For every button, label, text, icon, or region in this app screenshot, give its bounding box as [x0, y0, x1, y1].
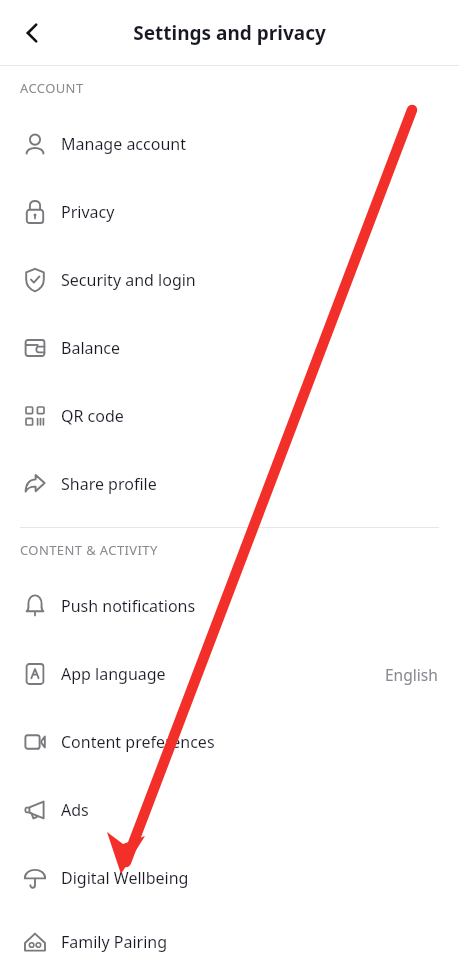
button[interactable]: Content preferences [0, 708, 459, 776]
staticText: Balance [61, 337, 121, 359]
button[interactable]: Push notifications [0, 572, 459, 640]
button[interactable]: Ads [0, 776, 459, 844]
button[interactable]: Back [8, 9, 56, 57]
button[interactable]: Balance [0, 314, 459, 382]
button[interactable]: Security and login [0, 246, 459, 314]
staticText: Ads [61, 799, 89, 821]
button[interactable]: Privacy [0, 178, 459, 246]
staticText: Manage account [61, 133, 186, 155]
staticText: English [385, 664, 438, 685]
button[interactable]: Digital Wellbeing [0, 844, 459, 912]
button[interactable]: Family Pairing [0, 912, 459, 972]
staticText: Push notifications [61, 595, 196, 617]
staticText: Share profile [61, 473, 157, 495]
staticText: Privacy [61, 201, 115, 223]
staticText: App language [61, 663, 166, 685]
staticText: QR code [61, 405, 124, 427]
staticText: Digital Wellbeing [61, 867, 189, 889]
staticText: Settings and privacy [133, 20, 326, 46]
staticText: CONTENT & ACTIVITY [20, 541, 158, 559]
button[interactable]: App language [0, 640, 459, 708]
button[interactable]: Share profile [0, 450, 459, 518]
staticText: Security and login [61, 269, 196, 291]
button[interactable]: QR code [0, 382, 459, 450]
button[interactable]: Manage account [0, 110, 459, 178]
staticText: Content preferences [61, 731, 215, 753]
staticText: Family Pairing [61, 931, 168, 953]
staticText: ACCOUNT [20, 79, 84, 97]
